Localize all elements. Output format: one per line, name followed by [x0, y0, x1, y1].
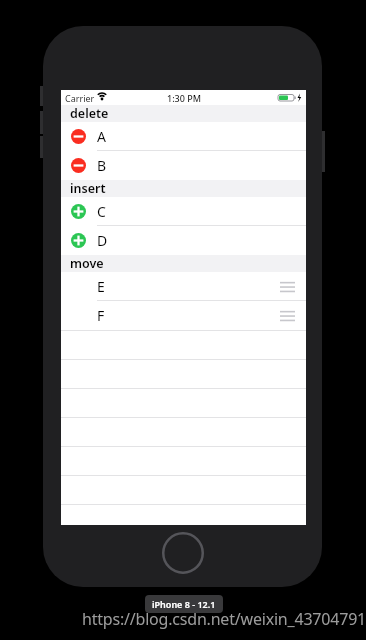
button[interactable]: D [61, 226, 306, 255]
staticText: Carrier [65, 92, 95, 104]
button[interactable]: E [61, 272, 306, 301]
staticText: delete [70, 105, 109, 122]
staticText: iPhone 8 - 12.1 [152, 598, 216, 610]
button[interactable]: iPhone 8 - 12.1 [145, 595, 223, 613]
staticText: https://blog.csdn.net/weixin_43704791 [82, 608, 366, 630]
staticText: 1:30 PM [167, 92, 201, 104]
staticText: D [97, 231, 108, 250]
staticText: B [97, 156, 107, 175]
staticText: A [97, 127, 106, 146]
staticText: move [70, 255, 104, 272]
button[interactable]: B [61, 151, 306, 180]
button[interactable]: C [61, 197, 306, 226]
staticText: F [97, 306, 105, 325]
staticText: E [97, 277, 105, 296]
button[interactable]: F [61, 301, 306, 330]
staticText: C [97, 202, 106, 221]
button[interactable]: A [61, 122, 306, 151]
staticText: insert [70, 180, 106, 197]
